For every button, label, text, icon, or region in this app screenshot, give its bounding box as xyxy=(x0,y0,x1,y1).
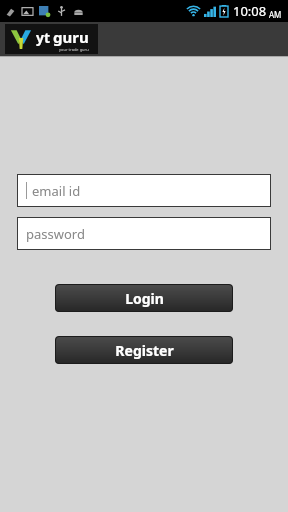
staticText: your trade guru xyxy=(59,47,89,52)
staticText: yt xyxy=(36,28,51,47)
button[interactable]: email id xyxy=(17,174,271,207)
staticText: AM xyxy=(269,9,282,20)
staticText: Register xyxy=(115,341,174,360)
staticText: Login xyxy=(125,289,164,308)
staticText: 10:08 xyxy=(233,2,267,20)
staticText: guru xyxy=(53,27,89,47)
staticText: password xyxy=(26,225,85,243)
button[interactable]: yt guru logo xyxy=(5,24,98,54)
button[interactable]: Register xyxy=(55,336,233,364)
button[interactable]: Login xyxy=(55,284,233,312)
staticText: email id xyxy=(32,182,81,200)
button[interactable]: password xyxy=(17,217,271,250)
